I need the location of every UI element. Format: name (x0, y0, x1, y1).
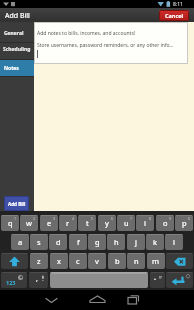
button[interactable] (166, 272, 193, 288)
staticText: 6 (111, 216, 114, 221)
button[interactable]: u (117, 215, 135, 231)
button[interactable]: v (88, 253, 106, 269)
staticText: i (144, 218, 146, 228)
staticText: 0 (188, 216, 191, 221)
staticText: Cancel (165, 12, 184, 19)
button[interactable]: z (30, 253, 48, 269)
button[interactable]: Cancel (159, 10, 189, 21)
button[interactable]: p (175, 215, 193, 231)
staticText: 2 (33, 216, 36, 221)
button[interactable]: w (20, 215, 38, 231)
button[interactable]: y (98, 215, 116, 231)
staticText: c (76, 256, 80, 266)
staticText: r (66, 218, 70, 228)
button[interactable]: e (40, 215, 58, 231)
staticText: 1 (14, 216, 17, 221)
button[interactable]: f (69, 234, 87, 250)
button[interactable]: n (127, 253, 145, 269)
button[interactable]: k (146, 234, 164, 250)
staticText: !? (159, 275, 162, 280)
button[interactable]: o (156, 215, 174, 231)
button[interactable]: x (50, 253, 68, 269)
button[interactable] (122, 290, 146, 310)
staticText: General (4, 30, 24, 37)
staticText: . (154, 273, 156, 283)
button[interactable]: 123 (1, 272, 27, 288)
staticText: f (77, 237, 80, 247)
staticText: h (114, 237, 119, 247)
staticText: d (56, 237, 61, 247)
staticText: v (95, 256, 99, 266)
button[interactable]: j (127, 234, 145, 250)
staticText: 9 (169, 216, 172, 221)
staticText: Notes (4, 65, 19, 72)
staticText: z (37, 256, 41, 266)
staticText: b (115, 256, 120, 266)
staticText: q (8, 218, 13, 228)
button[interactable]: s (30, 234, 48, 250)
button[interactable]: q (1, 215, 19, 231)
button[interactable] (166, 253, 193, 269)
staticText: u (124, 218, 129, 228)
button[interactable] (1, 253, 28, 269)
staticText: w (26, 218, 32, 228)
button[interactable]: Notes (0, 60, 34, 76)
staticText: Scheduling (3, 46, 31, 53)
staticText: t (86, 218, 89, 228)
button[interactable]: i (136, 215, 154, 231)
staticText: a (18, 237, 23, 247)
staticText: Add Bill (5, 11, 30, 21)
button[interactable]: b (108, 253, 126, 269)
button[interactable]: l (165, 234, 183, 250)
button[interactable]: c (69, 253, 87, 269)
staticText: 8 (149, 216, 152, 221)
staticText: n (134, 256, 139, 266)
staticText: Add Bill (8, 201, 26, 207)
button[interactable] (85, 290, 109, 310)
button[interactable]: h (107, 234, 125, 250)
staticText: 3 (53, 216, 56, 221)
staticText: s (37, 237, 41, 247)
staticText: y (105, 218, 109, 228)
staticText: Add notes to bills, incomes, and account… (37, 30, 136, 37)
staticText: 7 (130, 216, 133, 221)
staticText: p (182, 218, 187, 228)
staticText: Store usernames, password reminders, or … (37, 42, 174, 49)
button[interactable]: m (147, 253, 165, 269)
staticText: 123 (6, 279, 16, 286)
button[interactable]: . (150, 272, 165, 288)
staticText: 4 (72, 216, 75, 221)
button[interactable]: General (0, 25, 34, 42)
staticText: 8:11 (173, 1, 183, 8)
staticText: o (163, 218, 168, 228)
button[interactable]: t (78, 215, 96, 231)
staticText: x (57, 256, 61, 266)
button[interactable] (40, 290, 64, 310)
staticText: k (153, 237, 158, 247)
button[interactable] (50, 272, 148, 288)
staticText: j (135, 237, 137, 247)
button[interactable]: , (29, 272, 48, 288)
staticText: , (36, 274, 38, 284)
button[interactable]: g (88, 234, 106, 250)
button[interactable]: Add Bill (4, 196, 29, 211)
button[interactable]: Scheduling (0, 43, 34, 59)
staticText: l (173, 237, 175, 247)
button[interactable]: a (11, 234, 29, 250)
button[interactable]: d (49, 234, 67, 250)
staticText: m (152, 256, 160, 266)
staticText: e (47, 218, 52, 228)
staticText: g (95, 237, 100, 247)
button[interactable]: r (59, 215, 77, 231)
staticText: 5 (91, 216, 94, 221)
